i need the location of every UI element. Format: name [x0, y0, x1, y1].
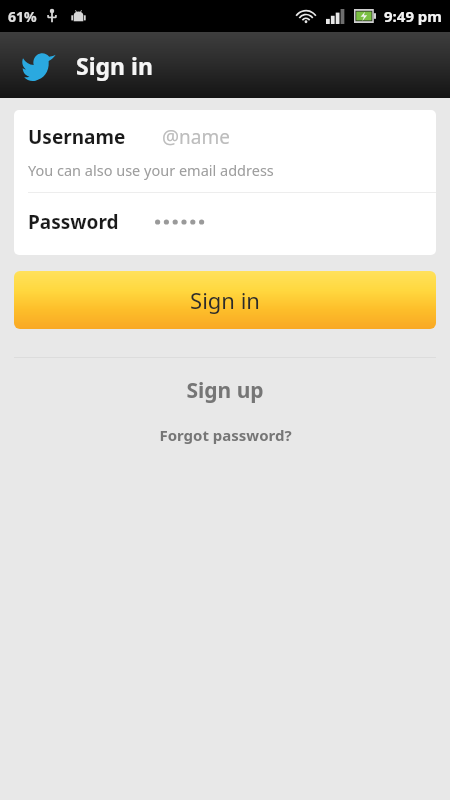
staticText: Sign in	[76, 50, 153, 81]
staticText: You can also use your email address	[28, 160, 274, 180]
staticText: Forgot password?	[159, 425, 292, 445]
staticText: 9:49 pm	[384, 6, 442, 26]
button[interactable]: Sign in	[14, 271, 436, 329]
staticText: @name	[162, 124, 230, 150]
staticText: Sign up	[186, 376, 264, 405]
button[interactable]: Username	[14, 110, 436, 192]
staticText: Password	[28, 209, 119, 235]
button[interactable]: Password	[14, 193, 436, 255]
button[interactable]: Sign up	[0, 372, 450, 409]
button[interactable]: Forgot password?	[0, 421, 450, 449]
staticText: Sign in	[190, 285, 260, 315]
staticText: 61%	[8, 7, 37, 26]
staticText: Username	[28, 124, 126, 150]
